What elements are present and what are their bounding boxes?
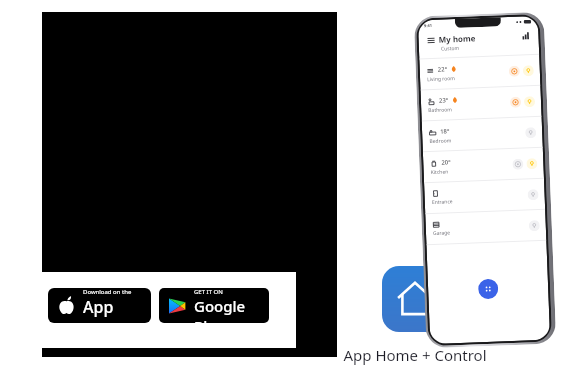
button[interactable]: Statistics [520,30,532,41]
button[interactable]: App Home + Control icon [382,266,448,332]
button[interactable]: GET IT ON [159,288,269,323]
staticText: 23° [439,96,449,105]
button[interactable]: Light Garage [529,220,540,231]
staticText: My home [438,32,476,45]
button[interactable]: Garage [425,210,546,244]
staticText: GET IT ON [194,288,223,296]
button[interactable]: Light Living room [523,65,534,76]
button[interactable]: Download on the [48,288,151,323]
staticText: 22° [438,65,448,74]
button[interactable]: Thermostat Bathroom [510,97,521,108]
staticText: Entrance [432,198,453,206]
button[interactable]: 22° [419,55,540,89]
staticText: Bathroom [428,106,452,114]
staticText: Living room [427,75,455,83]
staticText: Garage [433,229,451,237]
staticText: 20° [441,158,451,167]
button[interactable]: Light Bathroom [524,96,535,107]
button[interactable]: Light Bedroom [525,127,536,138]
button[interactable]: Thermostat Kitchen [512,158,524,170]
button[interactable]: 20° [423,148,544,182]
staticText: Google Play [194,296,261,323]
staticText: 9:41 [424,23,432,28]
staticText: Bedroom [429,137,452,145]
button[interactable]: More actions [478,279,499,299]
staticText: 18° [440,127,450,136]
staticText: App Home + Control [343,345,487,365]
staticText: Custom [441,45,460,53]
button[interactable]: Menu [425,35,436,45]
staticText: Download on the [83,288,132,296]
button[interactable]: Entrance [424,179,545,213]
staticText: App Store [83,296,142,323]
button[interactable]: 23° [420,86,542,120]
staticText: Kitchen [430,168,449,176]
button[interactable]: 18° [422,117,543,151]
button[interactable]: Thermostat Living room [509,66,520,77]
button[interactable]: Light Kitchen [526,158,538,169]
button[interactable]: Light Entrance [527,189,539,200]
